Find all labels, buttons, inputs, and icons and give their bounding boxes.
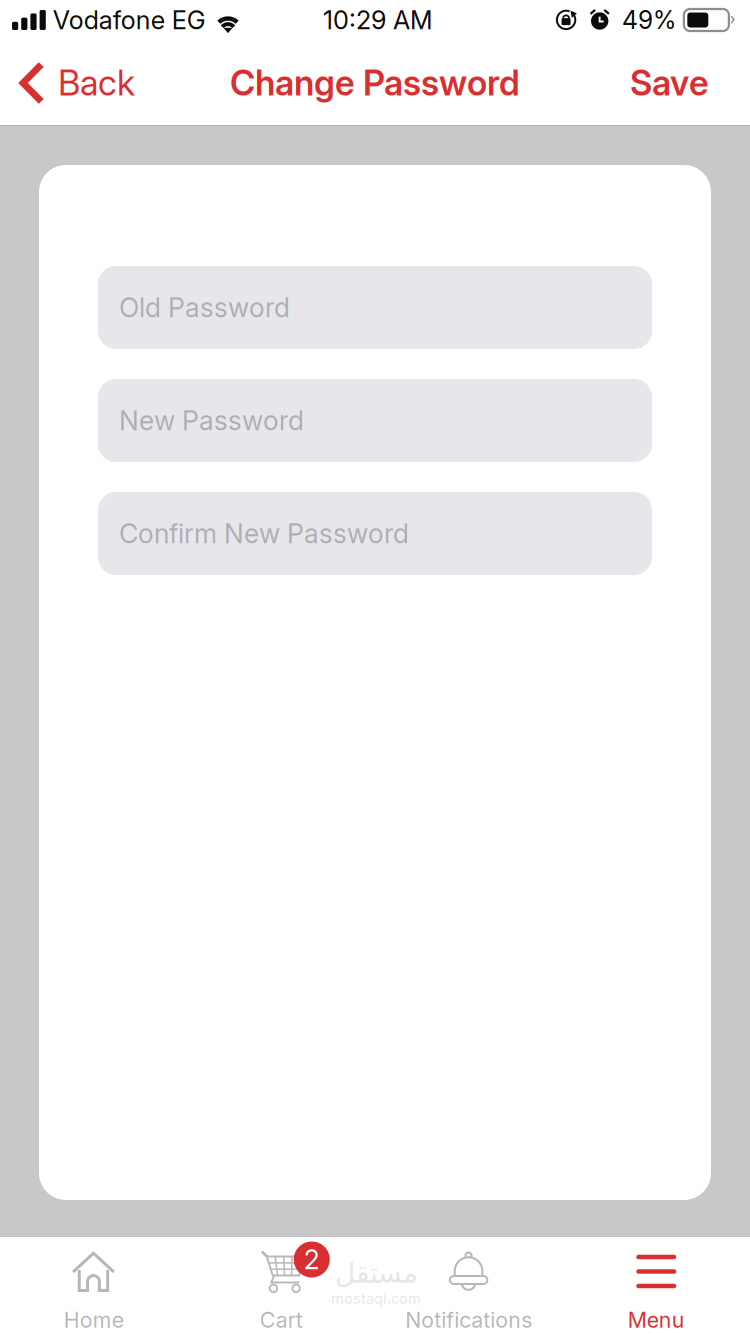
staticText: Home — [64, 1307, 124, 1333]
staticText: Notifications — [405, 1307, 532, 1333]
button[interactable]: Back — [0, 44, 153, 122]
button[interactable]: Home — [0, 1236, 187, 1334]
staticText: Vodafone EG — [53, 5, 206, 35]
staticText: mostaql.com — [331, 1289, 421, 1307]
staticText: Menu — [628, 1307, 685, 1333]
button[interactable]: Old Password — [98, 266, 652, 349]
staticText: Back — [58, 62, 135, 104]
staticText: Save — [630, 62, 709, 104]
button[interactable]: New Password — [98, 379, 652, 462]
staticText: 2 — [304, 1243, 320, 1276]
staticText: Confirm New Password — [119, 517, 409, 550]
button[interactable]: Confirm New Password — [98, 492, 652, 575]
button[interactable]: Notifications — [375, 1236, 562, 1334]
staticText: 10:29 AM — [323, 5, 433, 35]
staticText: Change Password — [230, 62, 520, 104]
button[interactable]: Menu — [562, 1236, 750, 1334]
button[interactable]: Save — [606, 44, 750, 122]
staticText: Old Password — [119, 291, 290, 324]
staticText: New Password — [119, 404, 304, 437]
staticText: 49% — [622, 5, 676, 35]
button[interactable]: 2 — [187, 1236, 375, 1334]
staticText: مستقل — [334, 1257, 417, 1289]
staticText: Cart — [260, 1307, 303, 1333]
